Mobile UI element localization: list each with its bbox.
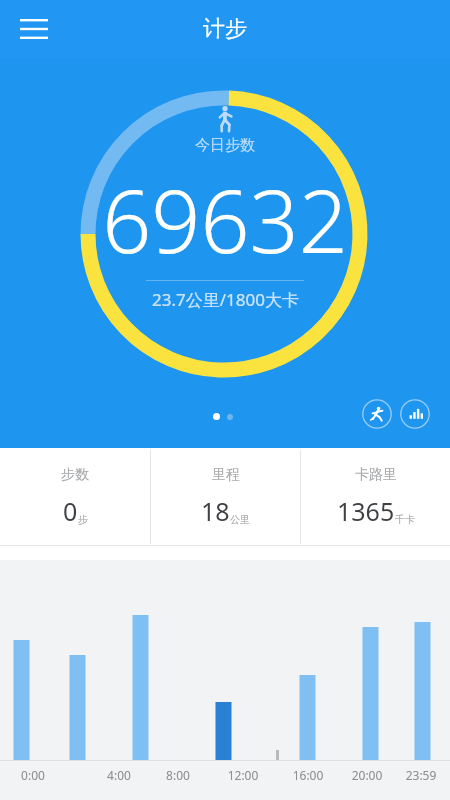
staticText: 18 bbox=[201, 494, 230, 528]
staticText: 69632 bbox=[102, 161, 348, 278]
staticText: 0:00 bbox=[11, 767, 55, 783]
staticText: 4:00 bbox=[97, 767, 141, 783]
button[interactable]: Statistics bbox=[400, 399, 430, 429]
staticText: 千卡 bbox=[395, 513, 415, 526]
button[interactable]: Start running bbox=[362, 399, 392, 429]
staticText: 步数 bbox=[61, 466, 89, 484]
button[interactable]: Menu bbox=[10, 5, 58, 53]
staticText: 计步 bbox=[203, 15, 247, 43]
staticText: 里程 bbox=[212, 466, 240, 484]
staticText: 20:00 bbox=[345, 767, 389, 783]
staticText: 23:59 bbox=[399, 767, 443, 783]
staticText: 1365 bbox=[337, 494, 395, 528]
staticText: 公里 bbox=[230, 513, 250, 526]
staticText: 8:00 bbox=[156, 767, 200, 783]
button[interactable]: 卡路里 bbox=[301, 448, 450, 546]
staticText: 16:00 bbox=[286, 767, 330, 783]
button[interactable]: 步数 bbox=[0, 448, 150, 546]
button[interactable]: 里程 bbox=[151, 448, 300, 546]
staticText: 0 bbox=[63, 494, 78, 528]
staticText: 步 bbox=[78, 513, 88, 526]
staticText: 12:00 bbox=[221, 767, 265, 783]
staticText: 今日步数 bbox=[195, 136, 255, 155]
staticText: 卡路里 bbox=[355, 466, 397, 484]
staticText: 23.7公里/1800大卡 bbox=[152, 288, 299, 311]
